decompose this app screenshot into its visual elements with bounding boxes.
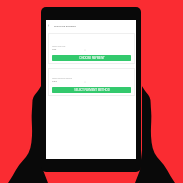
other: Back (47, 24, 50, 27)
staticText: Visa (52, 48, 57, 51)
staticText: Select card type (52, 45, 66, 47)
staticText: Select the payment (54, 24, 76, 27)
staticText: Card (52, 80, 57, 83)
button[interactable]: SELECT PAYMENT METHOD (52, 87, 131, 93)
button[interactable]: Back (46, 20, 136, 30)
button[interactable]: CHOOSE PAYMENT (52, 55, 131, 61)
staticText: SELECT PAYMENT METHOD (74, 88, 110, 92)
staticText: CHOOSE PAYMENT (79, 56, 105, 60)
staticText: Select payment method (52, 77, 73, 79)
